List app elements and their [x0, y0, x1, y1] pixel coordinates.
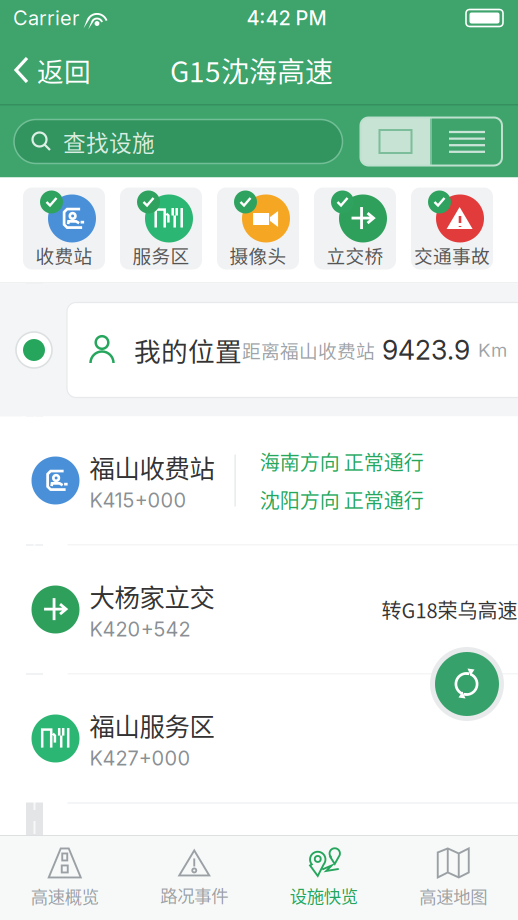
staticText: 查找设施 [63, 125, 155, 158]
staticText: 我的位置 [134, 331, 242, 369]
staticText: 路况事件 [160, 882, 228, 908]
staticText: K415+000 [89, 488, 186, 512]
staticText: G15沈海高速 [170, 50, 333, 90]
staticText: 大杨家立交 [89, 578, 214, 614]
button[interactable]: 服务区 [120, 187, 202, 269]
staticText: 海南方向 正常通行 [260, 447, 424, 476]
button[interactable]: 路况事件 [129, 836, 259, 920]
staticText: K427+000 [89, 746, 190, 770]
staticText: 4:42 PM [246, 6, 326, 30]
staticText: 高速概览 [31, 883, 99, 909]
staticText: 福山收费站 [89, 449, 214, 485]
button[interactable]: 返回 [0, 39, 103, 101]
staticText: 设施快览 [290, 883, 358, 908]
button[interactable]: 立交桥 [314, 187, 396, 269]
staticText: 转G18荣乌高速 [381, 595, 517, 624]
button[interactable]: 高速地图 [388, 836, 518, 920]
button[interactable]: 大杨家立交 [21, 545, 518, 673]
button[interactable]: 查找设施 [14, 119, 342, 163]
staticText: 立交桥 [326, 241, 383, 268]
button[interactable]: 交通事故 [411, 187, 493, 269]
button[interactable]: 收费站 [23, 187, 105, 269]
button[interactable]: 设施快览 [259, 836, 388, 920]
staticText: 服务区 [132, 241, 189, 268]
button[interactable]: 福山收费站 [21, 416, 518, 544]
staticText: K420+542 [89, 617, 190, 641]
staticText: 返回 [37, 51, 91, 89]
staticText: Carrier [13, 6, 79, 30]
staticText: 高速地图 [419, 883, 487, 909]
staticText: 9423.9 [375, 334, 470, 366]
staticText: 摄像头 [229, 241, 286, 268]
button[interactable]: 地图视图 [360, 117, 430, 165]
button[interactable]: 刷新 [430, 647, 504, 721]
staticText: 距离福山收费站 [242, 336, 375, 363]
staticText: 收费站 [35, 241, 92, 268]
button[interactable]: 列表视图 [432, 117, 502, 165]
button[interactable]: 高速概览 [0, 836, 129, 920]
staticText: 沈阳方向 正常通行 [260, 485, 424, 514]
staticText: 交通事故 [414, 241, 490, 268]
button[interactable]: 摄像头 [217, 187, 299, 269]
button[interactable]: 福山服务区 [21, 674, 518, 802]
staticText: Km [473, 339, 507, 361]
staticText: 福山服务区 [89, 707, 214, 743]
